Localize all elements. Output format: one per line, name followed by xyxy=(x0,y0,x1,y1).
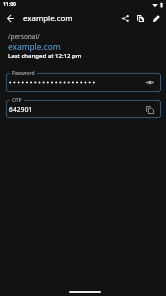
staticText: Password xyxy=(12,70,35,77)
button[interactable]: Copy password xyxy=(132,10,148,26)
staticText: example.com xyxy=(8,41,61,52)
button[interactable]: Back xyxy=(2,10,18,26)
button[interactable]: Show password xyxy=(143,76,156,89)
button[interactable]: Copy OTP xyxy=(143,103,156,116)
staticText: /personal/ xyxy=(8,32,40,41)
button[interactable] xyxy=(6,73,161,92)
staticText: 642901 xyxy=(9,105,33,114)
staticText: example.com xyxy=(23,13,73,24)
staticText: OTP xyxy=(12,97,22,104)
button[interactable]: Edit xyxy=(148,10,164,26)
staticText: Last changed at 12:12 pm xyxy=(8,52,82,60)
staticText: 11:00 xyxy=(3,1,16,8)
button[interactable]: 642901 xyxy=(6,100,161,118)
button[interactable]: Share xyxy=(117,10,133,26)
